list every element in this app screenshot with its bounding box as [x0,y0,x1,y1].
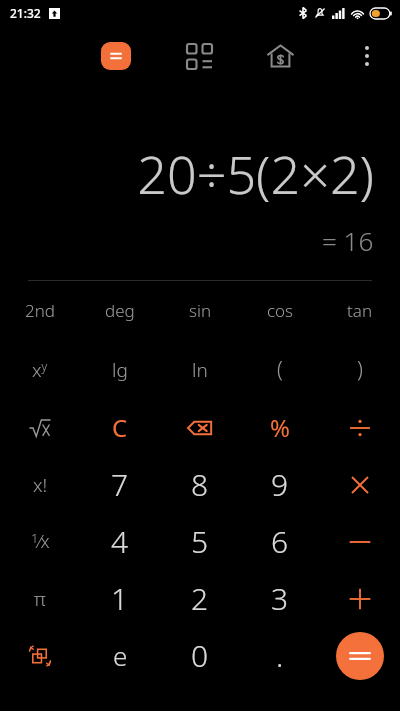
staticText: deg [105,299,135,322]
button[interactable]: 4 [80,513,160,570]
button[interactable]: Plus [320,570,400,627]
staticText: ) [357,355,363,384]
button[interactable]: Backspace [160,399,240,456]
staticText: 6 [271,521,289,562]
staticText: 1⁄x [31,529,50,554]
button[interactable]: 1⁄x [0,513,80,570]
button[interactable]: lg [80,340,160,399]
button[interactable]: 0 [160,627,240,684]
button[interactable]: Square root [0,399,80,456]
button[interactable]: sin [160,281,240,340]
button[interactable]: ) [320,340,400,399]
staticText: π [34,586,46,612]
staticText: = 16 [322,223,374,258]
button[interactable]: xy [0,340,80,399]
staticText: 1 [111,578,129,619]
button[interactable]: . [240,627,320,684]
staticText: x! [33,472,48,498]
button[interactable]: % [240,399,320,456]
staticText: 2 [191,578,209,619]
button[interactable]: Equals [320,627,400,684]
staticText: 8 [191,464,209,505]
button[interactable]: ( [240,340,320,399]
button[interactable]: Equals [336,632,384,680]
button[interactable]: 1 [80,570,160,627]
staticText: 5 [191,521,209,562]
staticText: ln [192,357,208,383]
button[interactable]: x! [0,456,80,513]
staticText: C [112,411,128,444]
staticText: 21:32 [10,5,41,21]
staticText: cos [267,299,294,322]
staticText: . [276,635,284,676]
staticText: e [113,638,128,673]
staticText: sin [189,299,212,322]
button[interactable]: 2 [160,570,240,627]
button[interactable]: 8 [160,456,240,513]
button[interactable]: Unit converter [177,34,221,78]
button[interactable]: More options [346,35,388,77]
button[interactable]: tan [320,281,400,340]
staticText: 3 [271,578,289,619]
button[interactable]: e [80,627,160,684]
button[interactable]: Minus [320,513,400,570]
staticText: 7 [111,464,129,505]
button[interactable]: 6 [240,513,320,570]
staticText: 2nd [25,299,56,322]
button[interactable]: 3 [240,570,320,627]
button[interactable]: C [80,399,160,456]
button[interactable]: π [0,570,80,627]
staticText: tan [347,299,373,322]
button[interactable]: Divide [320,399,400,456]
staticText: xy [32,357,48,383]
button[interactable]: 5 [160,513,240,570]
staticText: % [270,411,290,444]
button[interactable]: ln [160,340,240,399]
button[interactable]: 9 [240,456,320,513]
staticText: 0 [191,635,209,676]
button[interactable]: Convert [0,627,80,684]
button[interactable]: cos [240,281,320,340]
staticText: ( [277,355,283,384]
staticText: 4 [111,521,129,562]
staticText: 9 [271,464,289,505]
button[interactable]: 7 [80,456,160,513]
staticText: 20÷5(2×2) [137,138,374,209]
button[interactable]: 2nd [0,281,80,340]
button[interactable]: deg [80,281,160,340]
button[interactable]: Mortgage calculator [258,34,302,78]
button[interactable]: Multiply [320,456,400,513]
button[interactable]: Calculator [96,36,136,76]
staticText: lg [112,357,128,383]
